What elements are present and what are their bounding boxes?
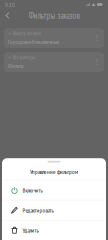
staticText: Фильтр активен [13, 30, 41, 37]
button[interactable]: Назад [0, 9, 15, 22]
staticText: Удалить [22, 226, 38, 234]
staticText: Редактировать [22, 206, 53, 214]
staticText: Городские безналичные [8, 38, 59, 46]
staticText: Фильтр [8, 62, 24, 70]
staticText: Включить [22, 186, 42, 194]
button[interactable]: Фильтр активен [4, 28, 104, 48]
staticText: Все фильтры [13, 54, 36, 61]
button[interactable]: Удалить [2, 220, 106, 240]
staticText: Управление фильтром [30, 168, 78, 176]
staticText: 9:10 [5, 0, 15, 8]
button[interactable]: Все фильтры [4, 52, 104, 72]
button[interactable]: Редактировать [2, 200, 106, 220]
staticText: Фильтры заказов [28, 10, 79, 21]
button[interactable]: Включить [2, 180, 106, 200]
